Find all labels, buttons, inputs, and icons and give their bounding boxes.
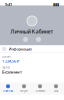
staticText: Личный Кабинет bbox=[10, 28, 53, 35]
button[interactable]: Главная bbox=[0, 83, 16, 95]
staticText: Платежи bbox=[34, 89, 45, 93]
staticText: Информация bbox=[8, 46, 31, 52]
button[interactable]: Услуги bbox=[16, 83, 32, 95]
staticText: Ещё bbox=[54, 89, 58, 93]
button[interactable]: Ещё bbox=[48, 83, 64, 95]
staticText: ▮▮▮ bbox=[53, 2, 59, 7]
staticText: Тариф bbox=[2, 66, 10, 69]
staticText: 1 234,56 ₽ bbox=[2, 58, 19, 64]
staticText: Услуги bbox=[20, 89, 28, 93]
staticText: 9:41 bbox=[5, 2, 12, 7]
staticText: Безлимит bbox=[2, 69, 22, 74]
button[interactable]: Платежи bbox=[32, 83, 48, 95]
staticText: Главная bbox=[2, 89, 13, 93]
staticText: Баланс bbox=[2, 55, 11, 58]
